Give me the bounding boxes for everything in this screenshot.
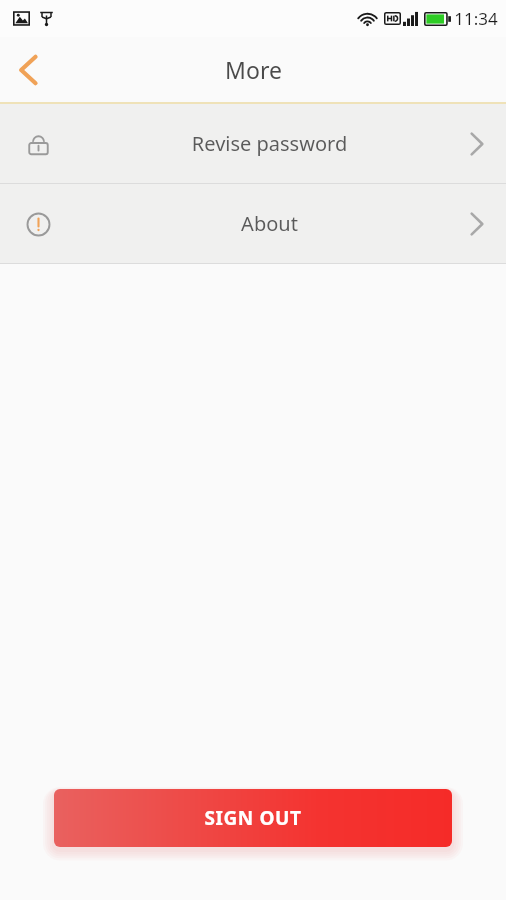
- staticText: 11:34: [454, 7, 498, 30]
- button[interactable]: About: [0, 184, 506, 263]
- button[interactable]: SIGN OUT: [54, 789, 452, 847]
- button[interactable]: Back: [0, 42, 56, 98]
- staticText: More: [225, 54, 282, 85]
- staticText: SIGN OUT: [204, 805, 302, 831]
- staticText: Revise password: [69, 130, 470, 157]
- button[interactable]: Revise password: [0, 104, 506, 183]
- staticText: About: [69, 210, 470, 237]
